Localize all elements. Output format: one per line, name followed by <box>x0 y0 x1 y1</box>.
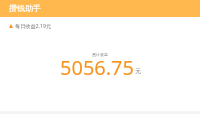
staticText: 累计收益 <box>92 52 108 57</box>
button[interactable]: 累计收益 <box>0 52 200 84</box>
staticText: 每日收益2.19元 <box>15 22 52 29</box>
button[interactable]: 收益上涨 <box>9 22 52 29</box>
staticText: 5056.75 <box>60 54 134 81</box>
other: 收益上涨 <box>9 24 13 28</box>
staticText: 攒钱助手 <box>9 3 41 13</box>
staticText: 元 <box>135 67 141 75</box>
button[interactable]: 攒钱助手 <box>0 0 200 17</box>
